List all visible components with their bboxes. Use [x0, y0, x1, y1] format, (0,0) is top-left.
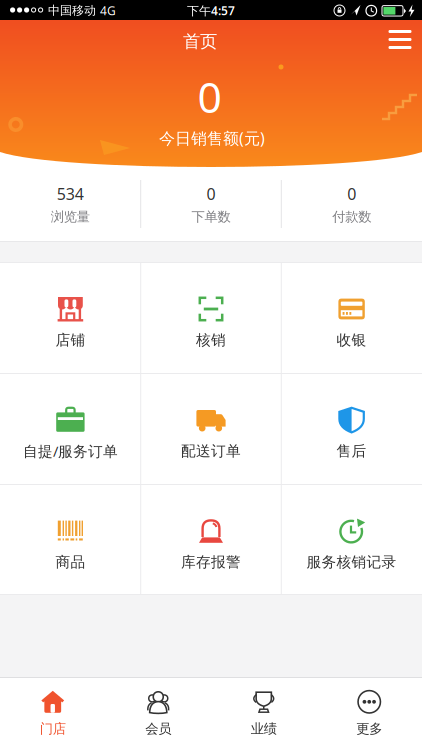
- button[interactable]: Menu: [385, 20, 415, 58]
- button[interactable]: 店铺: [0, 262, 141, 373]
- button[interactable]: 库存报警: [141, 484, 281, 595]
- staticText: 自提/服务订单: [23, 441, 118, 461]
- staticText: 浏览量: [51, 209, 90, 225]
- button[interactable]: 商品: [0, 484, 141, 595]
- staticText: 服务核销记录: [307, 553, 397, 571]
- staticText: 付款数: [332, 209, 371, 225]
- button[interactable]: 自提/服务订单: [0, 373, 141, 484]
- staticText: 今日销售额(元): [159, 127, 265, 149]
- staticText: 商品: [55, 553, 85, 571]
- button[interactable]: 收银: [281, 262, 422, 373]
- staticText: 业绩: [251, 721, 277, 737]
- staticText: 0: [197, 68, 221, 125]
- staticText: 店铺: [55, 331, 85, 349]
- button[interactable]: 服务核销记录: [281, 484, 422, 595]
- button[interactable]: 业绩: [211, 677, 316, 750]
- staticText: 4G: [100, 2, 116, 18]
- staticText: 534: [57, 183, 84, 204]
- staticText: 配送订单: [181, 442, 241, 460]
- button[interactable]: 更多: [316, 677, 422, 750]
- button[interactable]: 会员: [105, 677, 211, 750]
- staticText: 更多: [356, 721, 382, 737]
- button[interactable]: 门店: [0, 677, 105, 750]
- staticText: 会员: [145, 721, 171, 737]
- staticText: 核销: [196, 331, 226, 349]
- staticText: 下单数: [191, 209, 230, 225]
- staticText: 收银: [337, 331, 367, 349]
- button[interactable]: 售后: [281, 373, 422, 484]
- staticText: 下午4:57: [187, 2, 235, 18]
- staticText: 售后: [337, 442, 367, 460]
- staticText: 库存报警: [181, 553, 241, 571]
- staticText: 门店: [40, 721, 66, 737]
- button[interactable]: 核销: [141, 262, 281, 373]
- staticText: 0: [206, 183, 215, 204]
- staticText: 中国移动: [48, 3, 96, 18]
- button[interactable]: 配送订单: [141, 373, 281, 484]
- staticText: 0: [347, 183, 356, 204]
- staticText: 首页: [183, 31, 217, 52]
